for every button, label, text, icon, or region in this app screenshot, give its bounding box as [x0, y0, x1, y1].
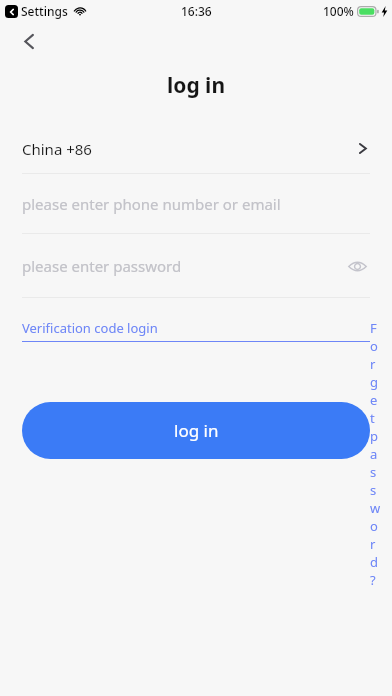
button[interactable]: Show password [342, 251, 372, 281]
button[interactable]: log in [22, 402, 370, 459]
staticText: please enter password [22, 256, 182, 276]
staticText: log in [174, 419, 219, 442]
staticText: China +86 [22, 139, 92, 159]
staticText: Verification code login [22, 319, 158, 337]
staticText: Settings [21, 3, 68, 19]
staticText: 16:36 [181, 3, 212, 19]
staticText: please enter phone number or email [22, 194, 281, 214]
button[interactable]: please enter password [22, 234, 342, 297]
staticText: 100% [323, 3, 354, 19]
button[interactable]: Back [12, 24, 46, 58]
button[interactable]: China +86 [0, 124, 392, 173]
staticText: log in [167, 71, 226, 100]
button[interactable]: Verification code login [22, 319, 370, 342]
button[interactable]: please enter phone number or email [0, 174, 392, 233]
